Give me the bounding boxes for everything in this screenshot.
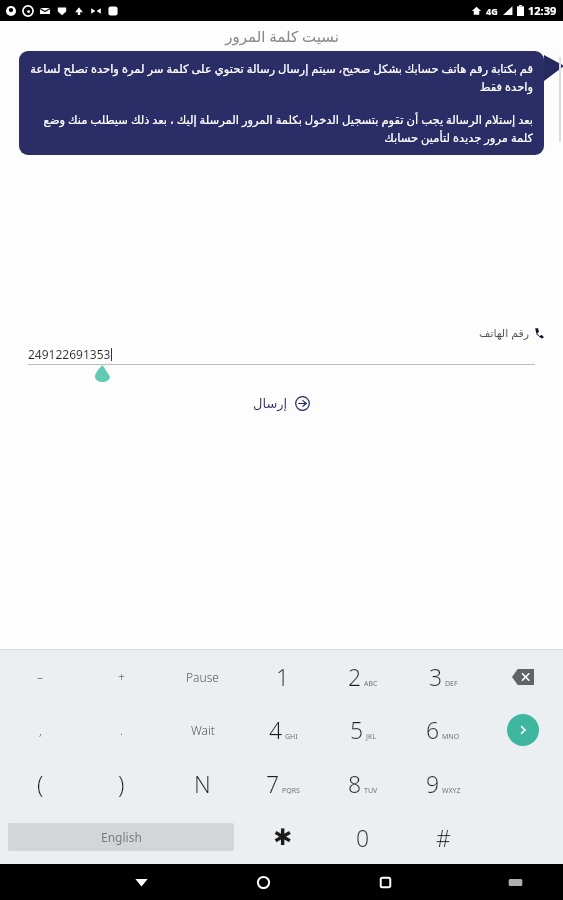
button[interactable]: Keyboard <box>497 864 533 900</box>
staticText: PQRS <box>282 786 300 796</box>
staticText: , <box>39 722 42 738</box>
staticText: قم بكتابة رقم هاتف حسابك بشكل صحيح، سيتم… <box>30 61 533 94</box>
button[interactable]: 9 <box>403 756 483 810</box>
button[interactable]: Back <box>123 864 159 900</box>
button[interactable]: 0 <box>323 810 403 864</box>
staticText: Pause <box>186 669 219 685</box>
button[interactable]: 8 <box>323 756 403 810</box>
staticText: Wait <box>191 722 215 738</box>
button[interactable]: Pause <box>162 650 243 703</box>
staticText: 3 <box>429 661 443 692</box>
staticText: DEF <box>445 679 458 689</box>
staticText: 6 <box>426 714 440 745</box>
staticText: N <box>194 768 211 799</box>
staticText: 1 <box>276 661 290 692</box>
staticText: رقم الهاتف <box>479 325 530 340</box>
button[interactable]: ( <box>0 756 81 810</box>
button[interactable]: ✱ <box>242 810 323 864</box>
staticText: 0 <box>356 822 370 853</box>
button[interactable]: 1 <box>243 650 323 703</box>
staticText: + <box>118 669 125 685</box>
staticText: 5 <box>350 714 364 745</box>
staticText: 8 <box>348 768 362 799</box>
staticText: نسيت كلمة المرور <box>225 26 339 46</box>
button[interactable]: English <box>8 823 234 851</box>
button[interactable]: Backspace <box>483 650 563 703</box>
staticText: 4G <box>486 5 498 17</box>
staticText: ✱ <box>273 824 293 851</box>
button[interactable]: – <box>0 650 81 703</box>
staticText: 12:39 <box>528 3 557 18</box>
button[interactable]: Recents <box>367 864 403 900</box>
button[interactable]: 5 <box>323 703 403 756</box>
staticText: MNO <box>442 732 460 742</box>
button[interactable]: 4 <box>243 703 323 756</box>
button[interactable]: ) <box>81 756 162 810</box>
button[interactable]: + <box>81 650 162 703</box>
button[interactable]: Enter <box>507 714 539 746</box>
button[interactable]: Home <box>245 864 281 900</box>
staticText: 4 <box>269 714 283 745</box>
button[interactable]: N <box>162 756 243 810</box>
button[interactable]: # <box>403 810 483 864</box>
staticText: 7 <box>266 768 280 799</box>
button[interactable]: 3 <box>403 650 483 703</box>
button[interactable]: 7 <box>243 756 323 810</box>
staticText: إرسال <box>253 396 288 411</box>
button[interactable]: إرسال <box>245 391 318 416</box>
staticText: 249122691353 <box>28 346 111 362</box>
staticText: JKL <box>366 732 376 742</box>
staticText: 2 <box>348 661 362 692</box>
staticText: ABC <box>364 679 378 689</box>
staticText: ) <box>118 768 125 799</box>
staticText: – <box>37 669 44 685</box>
button[interactable]: 6 <box>403 703 483 756</box>
staticText: WXYZ <box>442 786 461 796</box>
staticText: GHI <box>285 732 298 742</box>
staticText: بعد إستلام الرسالة يجب أن تقوم بتسجيل ال… <box>30 112 533 145</box>
staticText: ( <box>37 768 44 799</box>
staticText: TUV <box>364 786 378 796</box>
staticText: . <box>120 722 123 738</box>
staticText: English <box>101 829 142 845</box>
button[interactable]: 2 <box>323 650 403 703</box>
staticText: # <box>436 822 451 853</box>
staticText: 9 <box>426 768 440 799</box>
button[interactable]: Wait <box>162 703 243 756</box>
